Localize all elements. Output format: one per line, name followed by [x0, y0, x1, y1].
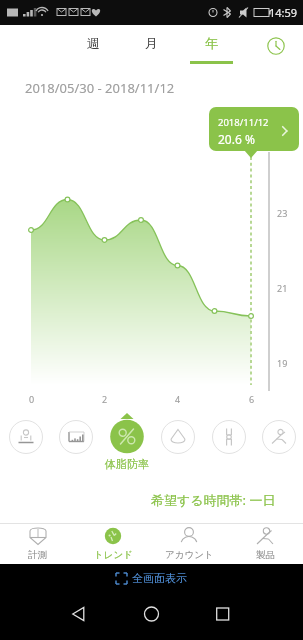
button[interactable]: トレンド: [75, 524, 151, 564]
staticText: トレンド: [94, 549, 133, 561]
staticText: アカウント: [165, 549, 214, 561]
button[interactable]: 年: [187, 25, 235, 67]
staticText: 製品: [256, 549, 275, 561]
staticText: 2: [102, 393, 108, 405]
staticText: 14:59: [269, 5, 298, 20]
button[interactable]: 週: [69, 25, 117, 67]
staticText: 21: [277, 282, 288, 294]
staticText: 0: [29, 393, 35, 405]
button[interactable]: 計測: [0, 524, 75, 564]
button[interactable]: History: [258, 28, 294, 64]
staticText: 20.6 %: [218, 131, 255, 147]
staticText: 19: [277, 357, 288, 369]
button[interactable]: Body fat: [106, 416, 148, 458]
staticText: 週: [87, 35, 100, 51]
button[interactable]: Bone mass: [208, 416, 250, 458]
button[interactable]: Activity: [258, 416, 300, 458]
button[interactable]: Weight chart: [55, 416, 97, 458]
staticText: 年: [205, 35, 218, 51]
staticText: 体脂防率: [105, 457, 149, 471]
staticText: 6: [249, 393, 255, 405]
staticText: 計測: [28, 549, 47, 561]
button[interactable]: Body water: [5, 416, 47, 458]
staticText: 4: [175, 393, 181, 405]
button[interactable]: 製品: [227, 524, 303, 564]
staticText: 2018/05/30 - 2018/11/12: [25, 79, 175, 97]
staticText: 月: [145, 35, 158, 51]
staticText: 2018/11/12: [218, 116, 269, 129]
staticText: 全画面表示: [132, 571, 187, 585]
staticText: 希望する時間帯: 一日: [151, 491, 276, 509]
button[interactable]: 月: [127, 25, 175, 67]
button[interactable]: 2018/11/12: [209, 107, 299, 151]
staticText: 23: [277, 207, 288, 219]
button[interactable]: Hydration: [157, 416, 199, 458]
button[interactable]: アカウント: [151, 524, 227, 564]
